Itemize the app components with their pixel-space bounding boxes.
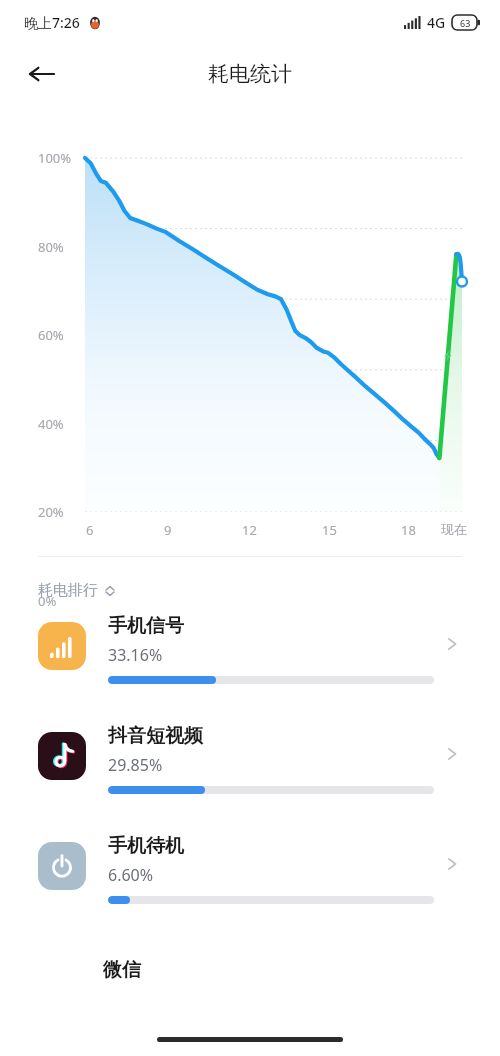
- staticText: 手机信号: [108, 614, 184, 638]
- staticText: 耗电统计: [208, 61, 292, 87]
- staticText: 15: [322, 521, 337, 539]
- staticText: 60%: [38, 326, 64, 344]
- button[interactable]: 手机信号: [0, 614, 500, 724]
- staticText: 6.60%: [108, 864, 154, 886]
- staticText: 晚上7:26: [24, 13, 80, 32]
- staticText: 63: [460, 17, 471, 29]
- staticText: 9: [164, 521, 172, 539]
- staticText: 微信: [103, 958, 141, 982]
- staticText: 12: [242, 521, 257, 539]
- button[interactable]: 手机待机: [0, 834, 500, 944]
- staticText: 4G: [427, 13, 446, 32]
- staticText: 6: [86, 521, 94, 539]
- staticText: 40%: [38, 415, 64, 433]
- staticText: 33.16%: [108, 644, 163, 666]
- staticText: 手机待机: [108, 834, 184, 858]
- staticText: 100%: [38, 149, 72, 167]
- staticText: 0%: [38, 592, 57, 610]
- staticText: 现在: [441, 521, 467, 537]
- button[interactable]: Back: [20, 52, 64, 96]
- staticText: 20%: [38, 503, 64, 521]
- staticText: 29.85%: [108, 754, 163, 776]
- staticText: 耗电排行: [38, 581, 98, 600]
- button[interactable]: 耗电排行: [38, 581, 116, 600]
- staticText: 18: [401, 521, 416, 539]
- button[interactable]: 抖音短视频: [0, 724, 500, 834]
- staticText: 抖音短视频: [108, 724, 203, 748]
- staticText: 80%: [38, 238, 64, 256]
